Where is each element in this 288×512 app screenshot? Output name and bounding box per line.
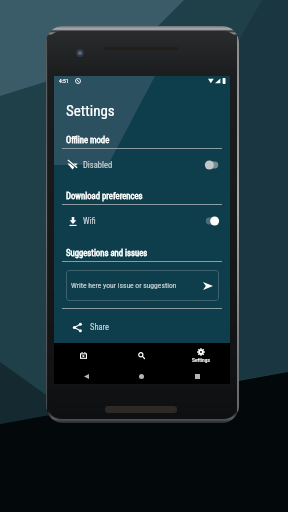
button[interactable]: Recents	[191, 370, 204, 383]
button[interactable]: Back	[80, 370, 93, 383]
staticText: Wifi	[83, 216, 96, 226]
button[interactable]: Settings	[171, 343, 230, 368]
staticText: Settings	[192, 357, 210, 363]
button[interactable]: Home	[135, 370, 148, 383]
staticText: Settings	[66, 102, 115, 120]
button[interactable]: Share	[62, 314, 222, 340]
staticText: Suggestions and issues	[66, 248, 148, 258]
staticText: Offline mode	[66, 135, 110, 145]
button[interactable]: Disabled	[62, 149, 222, 181]
staticText: Write here your issue or suggestion	[71, 281, 177, 290]
staticText: Disabled	[83, 160, 113, 170]
staticText: Download preferences	[66, 191, 143, 201]
button[interactable]: Send	[201, 279, 215, 293]
button[interactable]: Toggle off	[202, 158, 222, 172]
button[interactable]: Search	[112, 343, 171, 368]
staticText: 4:51	[59, 78, 69, 85]
staticText: Share	[90, 322, 110, 332]
button[interactable]: Write here your issue or suggestion	[66, 270, 219, 301]
button[interactable]: Library	[54, 343, 112, 368]
button[interactable]: Wifi	[62, 205, 222, 237]
button[interactable]: Toggle on	[202, 214, 222, 228]
